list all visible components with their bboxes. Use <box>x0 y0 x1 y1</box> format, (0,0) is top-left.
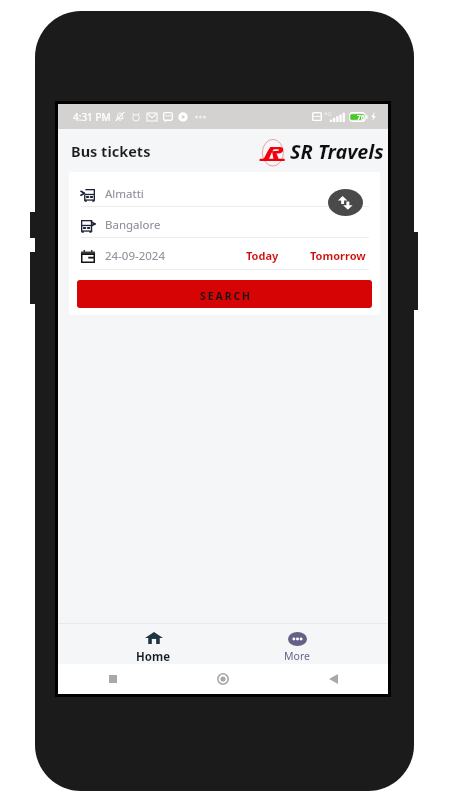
button[interactable]: 24-09-2024 <box>69 238 380 270</box>
button[interactable]: More <box>225 623 369 664</box>
staticText: 4G <box>324 110 332 118</box>
button[interactable]: Recents <box>58 664 168 694</box>
button[interactable]: Back <box>278 664 388 694</box>
staticText: More <box>284 649 310 663</box>
staticText: Almatti <box>105 186 144 202</box>
button[interactable]: Home <box>168 664 278 694</box>
button[interactable]: SEARCH <box>77 280 372 308</box>
button[interactable]: Today <box>242 242 283 267</box>
staticText: Today <box>246 248 279 263</box>
staticText: SEARCH <box>200 289 252 303</box>
other: SR Travels logo <box>259 139 285 167</box>
button[interactable]: Almatti <box>69 176 380 207</box>
staticText: 24-09-2024 <box>105 248 166 264</box>
staticText: 76 <box>357 113 365 122</box>
staticText: Bus tickets <box>71 141 151 161</box>
staticText: Tomorrow <box>310 248 366 263</box>
staticText: 4:31 PM <box>73 110 111 124</box>
button[interactable]: Swap source and destination <box>328 189 363 216</box>
staticText: SR Travels <box>290 138 384 165</box>
button[interactable]: Tomorrow <box>306 242 370 267</box>
button[interactable]: Home <box>81 623 225 664</box>
staticText: Home <box>136 649 171 665</box>
staticText: Bangalore <box>105 217 161 233</box>
button[interactable]: Bangalore <box>69 207 380 238</box>
